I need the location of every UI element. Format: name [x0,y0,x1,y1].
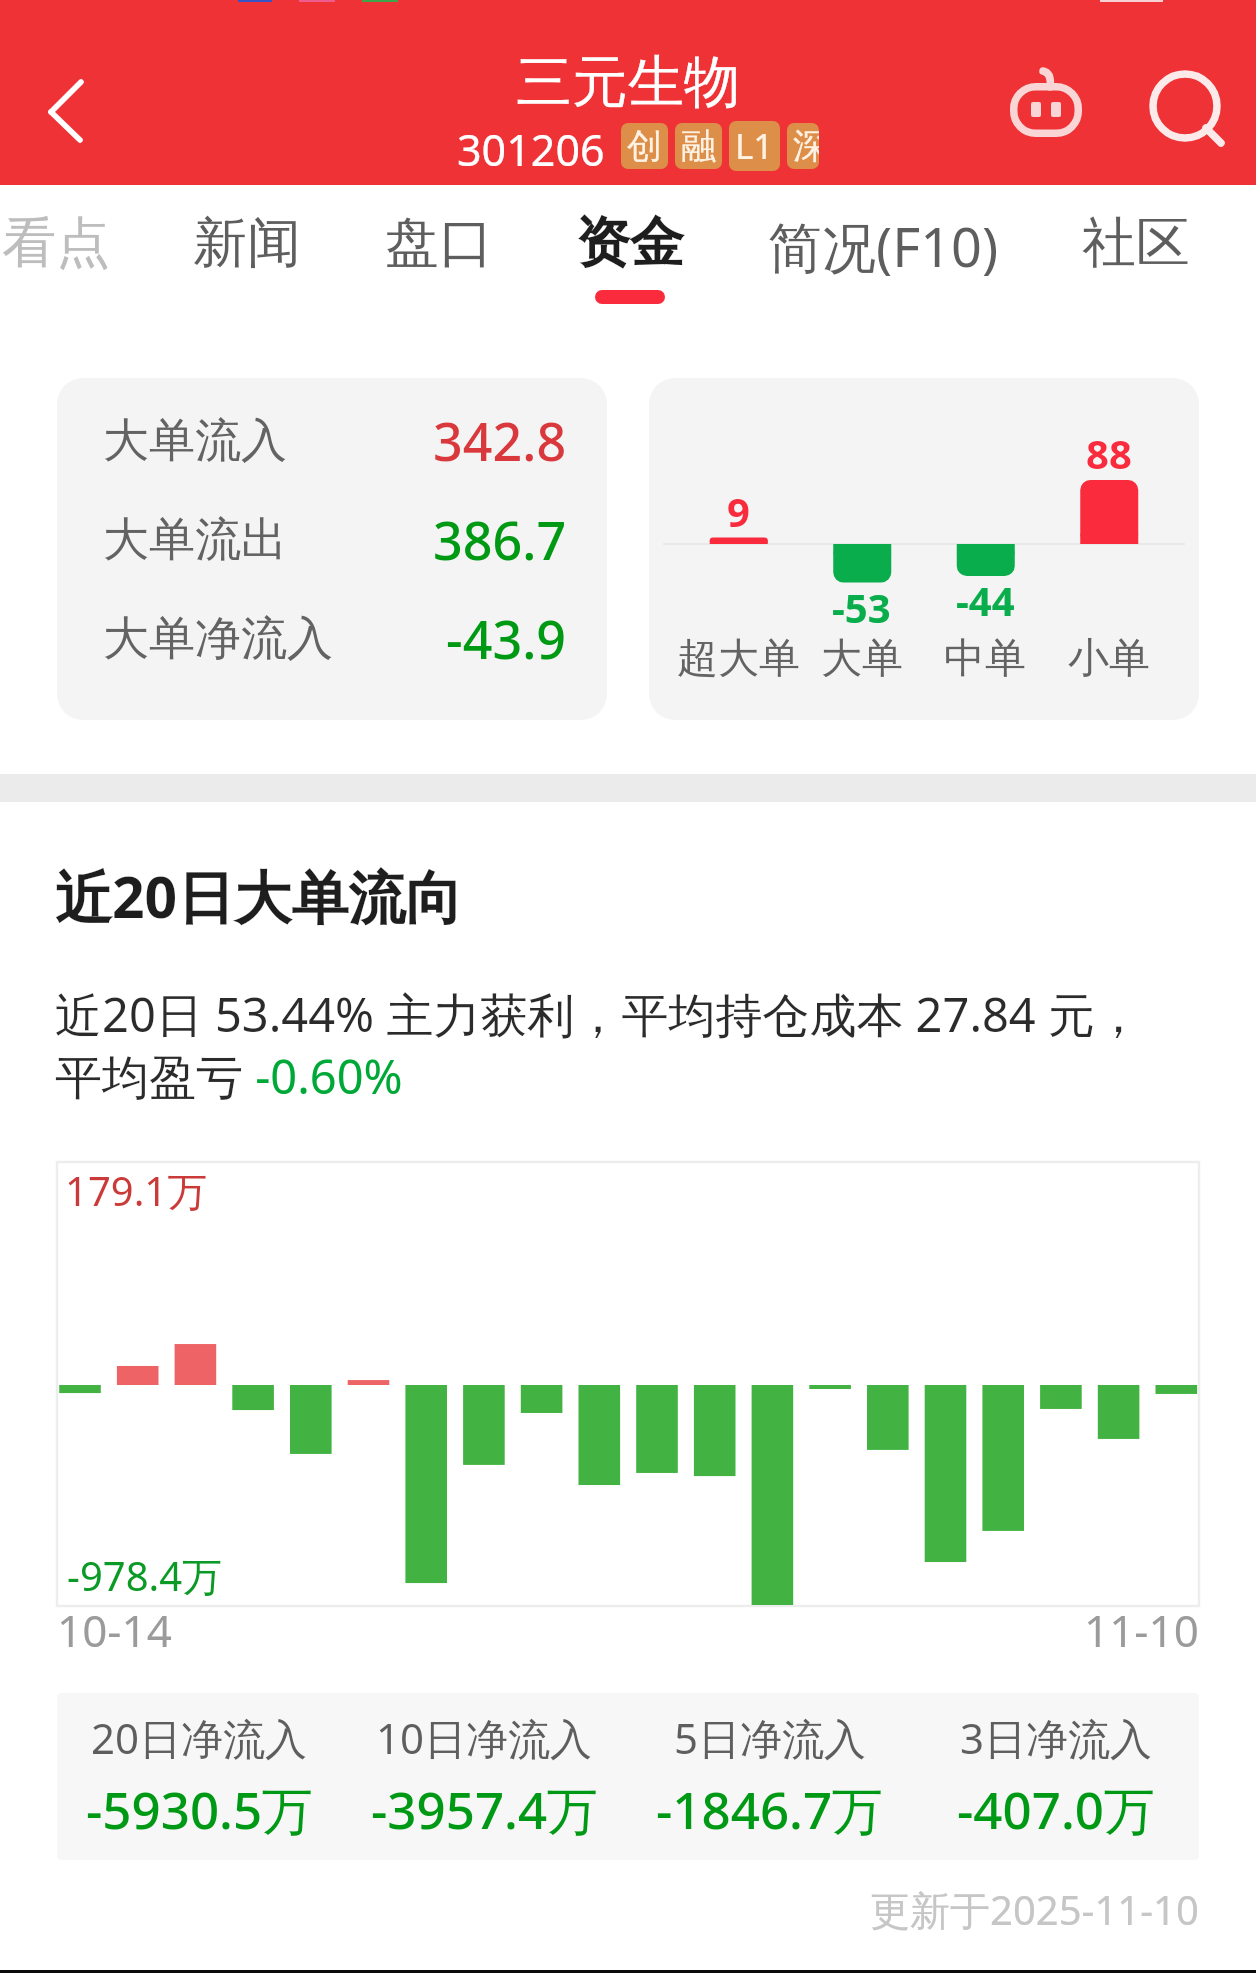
button[interactable]: 盘口 [385,185,493,277]
button[interactable]: 大单流入 [57,378,607,720]
staticText: 盘口 [385,209,493,277]
staticText: 超大单 [677,633,800,685]
staticText: -5930.5万 [86,1774,314,1844]
staticText: 看点 [2,209,110,277]
button[interactable]: 社区 [1082,185,1190,277]
button[interactable]: AI assistant [992,50,1100,154]
staticText: 179.1万 [65,1163,208,1218]
staticText: -1846.7万 [656,1774,884,1844]
staticText: 简况(F10) [768,209,999,283]
staticText: 88 [1086,426,1132,480]
button[interactable]: 资金 [576,185,684,304]
staticText: 301206 [457,120,605,172]
staticText: 大单 [821,633,903,685]
button[interactable]: 新闻 [193,185,301,277]
staticText: -53 [832,580,891,634]
staticText: 20日净流入 [91,1709,308,1766]
staticText: 融 [681,124,716,168]
staticText: 9 [727,484,750,538]
staticText: 近20日大单流向 [55,857,463,935]
staticText: -3957.4万 [371,1774,599,1844]
staticText: 11-10 [1084,1600,1199,1660]
staticText: 3日净流入 [960,1709,1153,1766]
staticText: 大单流出 [103,511,287,569]
staticText: -407.0万 [957,1774,1155,1844]
staticText: 小单 [1068,633,1150,685]
button[interactable]: 简况(F10) [768,185,999,283]
staticText: 10-14 [57,1600,172,1660]
staticText: 中单 [944,633,1026,685]
staticText: 更新于2025-11-10 [870,1882,1199,1937]
staticText: 社区 [1082,209,1190,277]
staticText: 大单流入 [103,412,287,470]
staticText: 342.8 [433,405,567,476]
staticText: 近20日 53.44% 主力获利，平均持仓成本 27.84 元，平均盈亏 -0.… [55,982,1181,1108]
staticText: 深 [793,124,813,168]
button[interactable]: 9 [649,378,1199,720]
staticText: -44 [956,573,1015,627]
button[interactable]: 看点 [2,185,110,277]
button[interactable]: Back [20,46,116,142]
button[interactable]: Search [1136,50,1240,154]
staticText: 386.7 [433,504,567,575]
staticText: -978.4万 [67,1548,223,1603]
staticText: L1 [735,122,774,170]
staticText: 资金 [576,209,684,277]
staticText: 5日净流入 [674,1709,867,1766]
staticText: 创 [627,124,662,168]
staticText: -43.9 [446,603,567,674]
staticText: 三元生物 [516,47,740,118]
staticText: 大单净流入 [103,610,333,668]
staticText: 10日净流入 [376,1709,593,1766]
staticText: 新闻 [193,209,301,277]
